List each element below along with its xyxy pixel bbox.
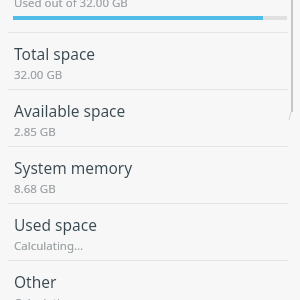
- button[interactable]: Available space: [0, 90, 300, 146]
- button[interactable]: Used out of 32.00 GB: [0, 0, 300, 32]
- button[interactable]: Other: [0, 261, 300, 300]
- staticText: Calculating…: [14, 238, 84, 254]
- staticText: Total space: [14, 43, 96, 64]
- staticText: 32.00 GB: [14, 67, 63, 83]
- staticText: 8.68 GB: [14, 181, 56, 197]
- staticText: Calculating…: [14, 295, 84, 300]
- button[interactable]: Used space: [0, 204, 300, 260]
- staticText: System memory: [14, 157, 133, 178]
- staticText: Used space: [14, 214, 97, 235]
- staticText: 2.85 GB: [14, 124, 56, 140]
- button[interactable]: Total space: [0, 33, 300, 89]
- staticText: Other: [14, 271, 57, 292]
- staticText: Used out of 32.00 GB: [14, 0, 128, 11]
- button[interactable]: System memory: [0, 147, 300, 203]
- staticText: Available space: [14, 100, 126, 121]
